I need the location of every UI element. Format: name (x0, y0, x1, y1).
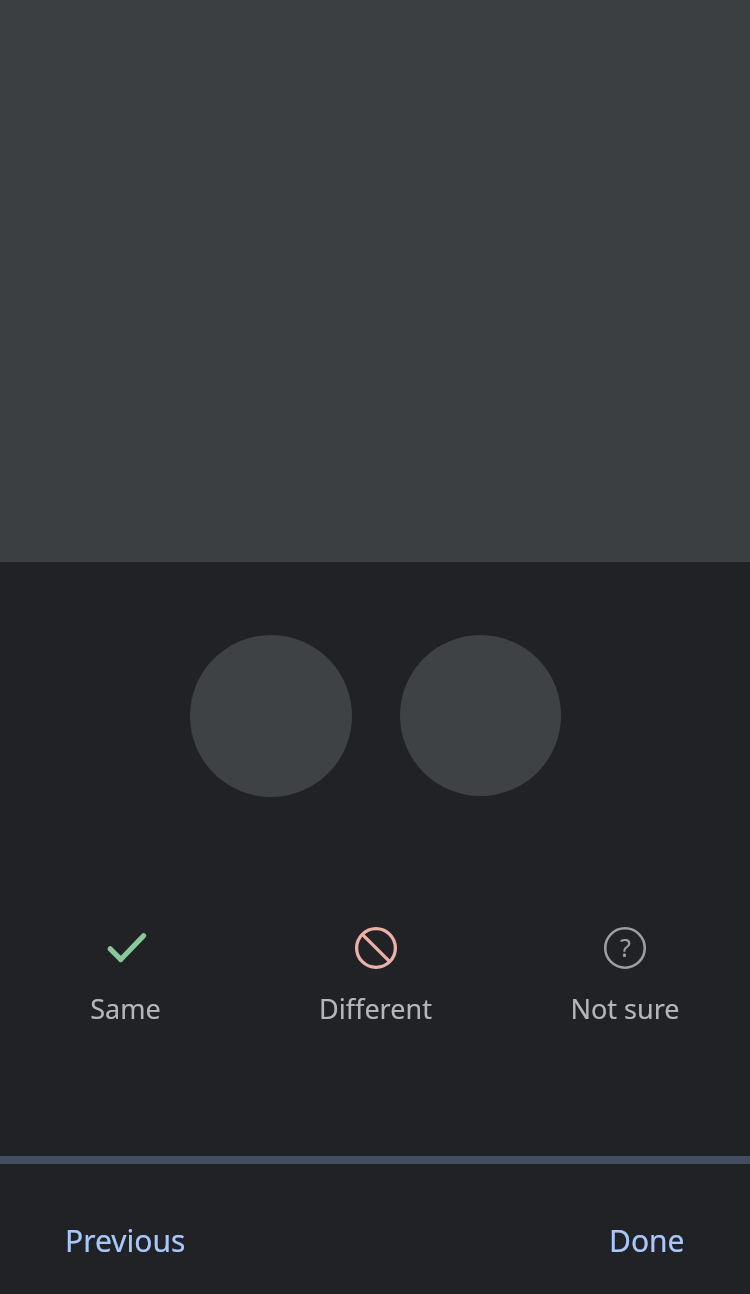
staticText: ? (620, 930, 631, 964)
button[interactable]: Same (90, 920, 161, 1033)
button[interactable]: Different (319, 920, 432, 1033)
button[interactable]: Not sure (570, 920, 680, 1033)
other: Same (104, 926, 148, 970)
button[interactable]: Done (589, 1214, 750, 1267)
other: Not sure (603, 926, 647, 970)
staticText: Done (609, 1220, 685, 1261)
staticText: Not sure (570, 990, 680, 1027)
staticText: Previous (65, 1220, 186, 1261)
staticText: Same (90, 990, 161, 1027)
other: Different (354, 926, 398, 970)
staticText: Different (319, 990, 432, 1027)
button[interactable]: Previous (0, 1214, 206, 1267)
